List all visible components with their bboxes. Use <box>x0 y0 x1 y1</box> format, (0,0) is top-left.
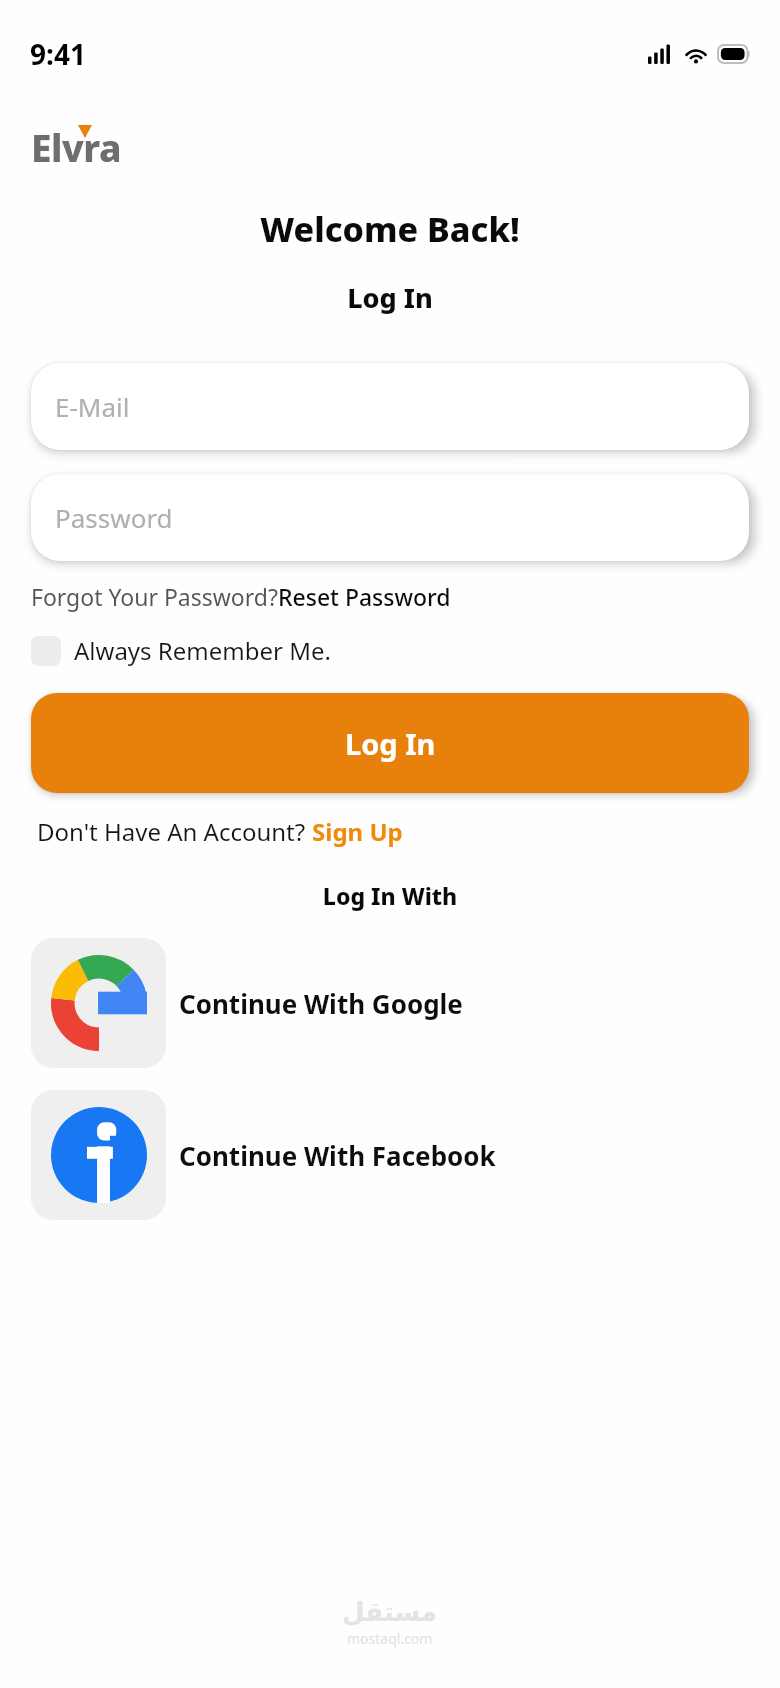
staticText: Don't Have An Account? <box>37 815 312 848</box>
staticText: Reset Password <box>278 581 451 612</box>
staticText: Log In <box>345 724 436 763</box>
staticText: Always Remember Me. <box>74 634 331 667</box>
button[interactable]: Log In <box>31 693 749 793</box>
staticText: mostaql.com <box>347 1629 433 1648</box>
staticText: E-Mail <box>55 389 130 424</box>
button[interactable]: E-Mail <box>31 363 749 450</box>
button[interactable]: Always Remember Me. <box>31 634 331 667</box>
staticText: Welcome Back! <box>0 206 780 252</box>
staticText: Log In With <box>0 880 780 911</box>
staticText: Elvra <box>31 122 121 166</box>
button[interactable]: Elvra <box>31 122 121 166</box>
staticText: 9:41 <box>30 35 86 73</box>
staticText: Forgot Your Password? <box>31 581 278 612</box>
staticText: مستقل <box>342 1597 438 1627</box>
staticText: Sign Up <box>312 815 403 848</box>
button[interactable]: Don't Have An Account? <box>37 815 403 848</box>
staticText: Log In <box>0 279 780 316</box>
button[interactable]: Continue With Facebook <box>31 1090 749 1220</box>
staticText: Password <box>55 500 173 535</box>
staticText: Continue With Facebook <box>179 1138 496 1173</box>
staticText: Continue With Google <box>179 986 463 1021</box>
button[interactable]: Forgot Your Password? <box>31 581 451 612</box>
button[interactable]: Password <box>31 474 749 561</box>
button[interactable]: Continue With Google <box>31 938 749 1068</box>
